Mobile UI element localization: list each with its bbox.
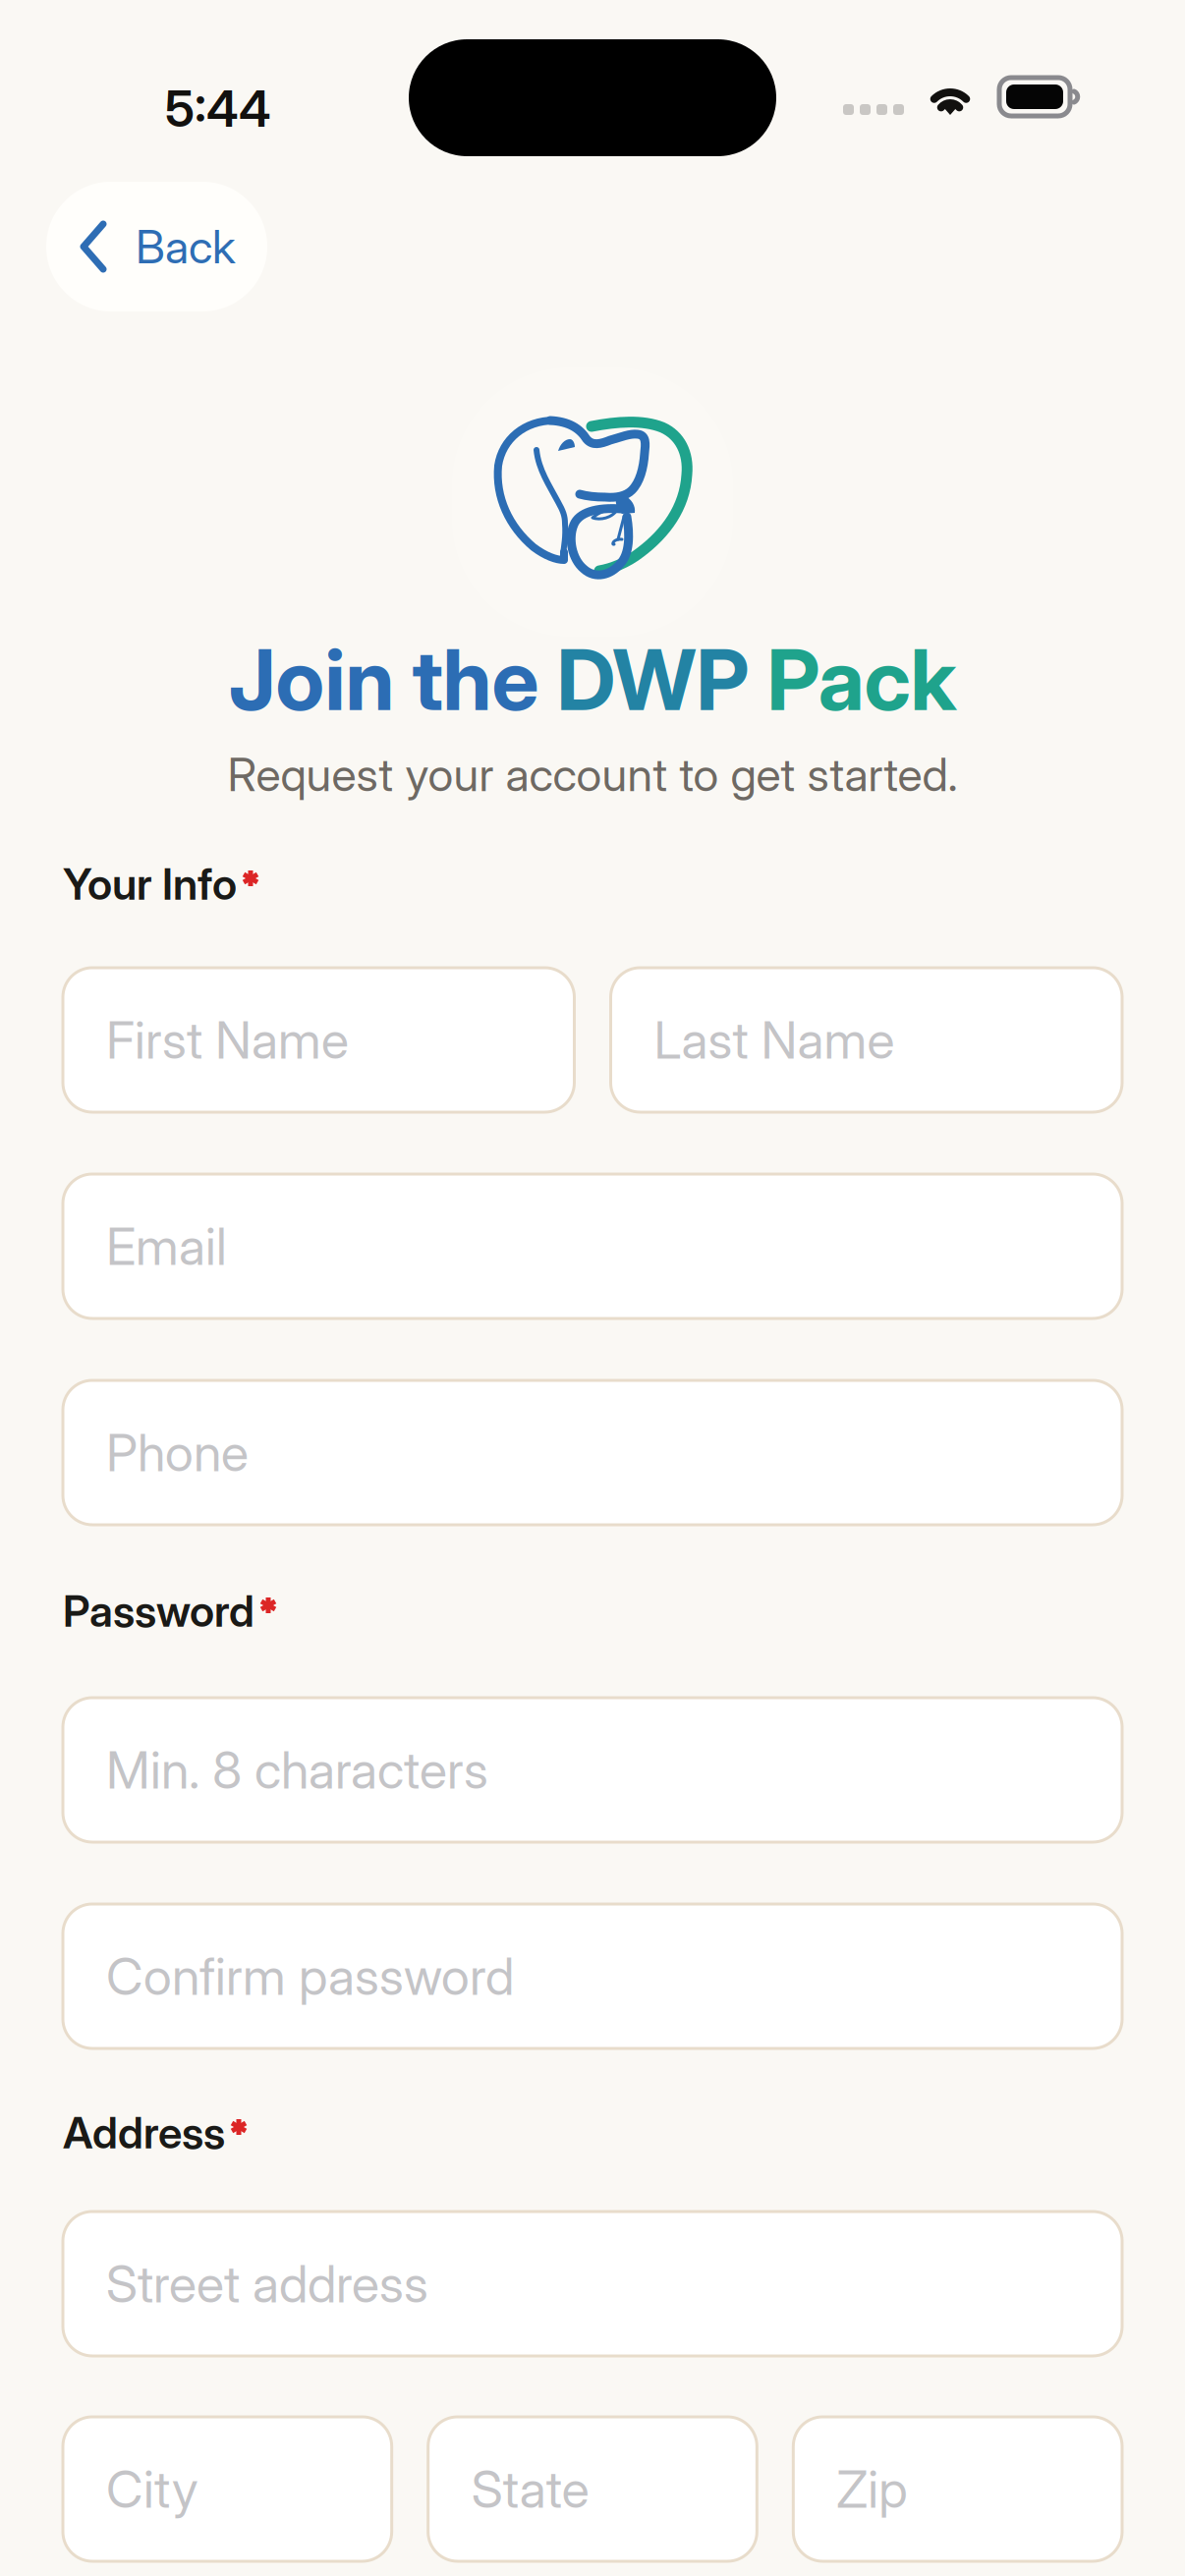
button[interactable]: Zip: [793, 2417, 1122, 2561]
staticText: Back: [136, 219, 236, 274]
staticText: Request your account to get started.: [227, 747, 958, 802]
button[interactable]: State: [428, 2417, 757, 2561]
staticText: Pack: [767, 629, 957, 730]
staticText: Join the: [228, 629, 557, 730]
staticText: First Name: [106, 1009, 349, 1071]
button[interactable]: City: [63, 2417, 392, 2561]
button[interactable]: Email: [63, 1174, 1122, 1318]
staticText: Phone: [106, 1422, 249, 1483]
staticText: Your Info: [63, 858, 237, 910]
staticText: Confirm password: [106, 1945, 514, 2007]
staticText: 5:44: [165, 79, 271, 139]
staticText: Email: [106, 1215, 227, 1277]
staticText: Street address: [106, 2253, 428, 2315]
button[interactable]: Confirm password: [63, 1904, 1122, 2048]
button[interactable]: Street address: [63, 2212, 1122, 2356]
staticText: Address: [63, 2106, 225, 2159]
staticText: DWP: [557, 629, 767, 730]
button[interactable]: Last Name: [611, 968, 1122, 1112]
button[interactable]: Phone: [63, 1380, 1122, 1525]
button[interactable]: First Name: [63, 968, 574, 1112]
staticText: State: [471, 2458, 589, 2520]
button[interactable]: Back: [46, 182, 267, 311]
staticText: Last Name: [654, 1009, 895, 1071]
staticText: Password: [63, 1585, 254, 1637]
staticText: Zip: [836, 2458, 907, 2520]
button[interactable]: Min. 8 characters: [63, 1698, 1122, 1842]
staticText: City: [106, 2458, 198, 2520]
staticText: Min. 8 characters: [106, 1739, 488, 1801]
